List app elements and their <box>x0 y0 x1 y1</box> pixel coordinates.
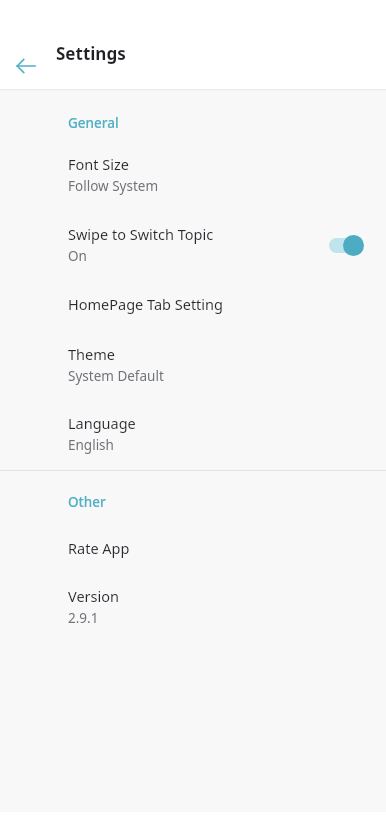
staticText: Theme <box>68 344 115 364</box>
staticText: General <box>68 114 119 132</box>
staticText: Font Size <box>68 154 129 174</box>
staticText: English <box>68 436 114 454</box>
staticText: Rate App <box>68 538 130 558</box>
staticText: HomePage Tab Setting <box>68 294 223 314</box>
button[interactable]: Back <box>10 50 42 82</box>
staticText: Version <box>68 586 119 606</box>
button[interactable]: Swipe to Switch Topic <box>0 224 386 265</box>
button[interactable]: Swipe to Switch Topic toggle, on <box>328 232 364 258</box>
staticText: Other <box>68 493 106 511</box>
staticText: System Default <box>68 367 164 385</box>
button[interactable]: Version <box>0 586 386 627</box>
staticText: Language <box>68 413 136 433</box>
staticText: Swipe to Switch Topic <box>68 224 214 244</box>
button[interactable]: HomePage Tab Setting <box>0 294 386 314</box>
staticText: Settings <box>56 42 126 65</box>
staticText: On <box>68 247 87 265</box>
button[interactable]: Font Size <box>0 154 386 195</box>
button[interactable]: Language <box>0 413 386 454</box>
staticText: 2.9.1 <box>68 609 99 627</box>
button[interactable]: Rate App <box>0 538 386 558</box>
button[interactable]: Theme <box>0 344 386 385</box>
staticText: Follow System <box>68 177 159 195</box>
